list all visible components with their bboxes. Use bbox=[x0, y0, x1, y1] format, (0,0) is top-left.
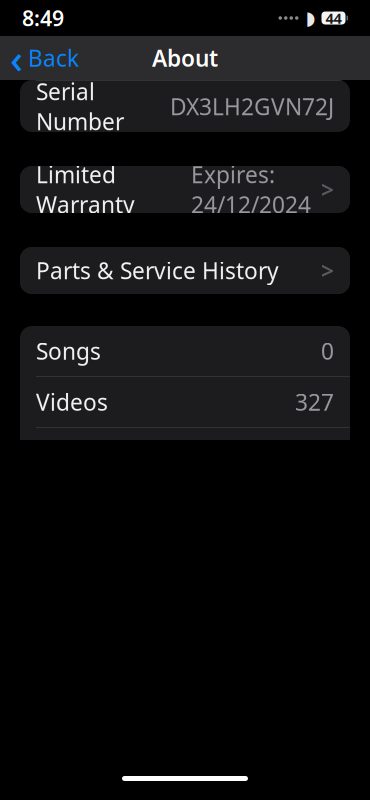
staticText: 0 bbox=[321, 336, 334, 366]
staticText: Videos bbox=[36, 387, 108, 417]
staticText: Serial Number bbox=[36, 76, 124, 137]
button[interactable]: Limited Warranty bbox=[20, 166, 350, 213]
staticText: ◗ bbox=[305, 7, 315, 29]
staticText: 8:49 bbox=[22, 4, 64, 32]
staticText: 44 bbox=[325, 8, 341, 28]
staticText: > bbox=[321, 255, 334, 285]
staticText: 327 bbox=[295, 387, 334, 417]
staticText: About bbox=[152, 43, 218, 73]
staticText: 274 bbox=[295, 438, 334, 468]
button[interactable]: Parts & Service History bbox=[20, 247, 350, 294]
staticText: Modem Firmware bbox=[36, 775, 226, 800]
staticText: Photos bbox=[36, 438, 111, 468]
staticText: DX3LH2GVN72J bbox=[170, 91, 334, 121]
staticText: Back bbox=[28, 43, 79, 73]
staticText: Expires: 24/12/2024 bbox=[191, 159, 311, 220]
staticText: Songs bbox=[36, 336, 101, 366]
staticText: ‹ bbox=[10, 31, 23, 84]
staticText: Parts & Service History bbox=[36, 255, 279, 285]
staticText: > bbox=[321, 174, 334, 204]
button[interactable]: ‹ bbox=[0, 36, 89, 80]
staticText: Limited Warranty bbox=[36, 159, 135, 220]
